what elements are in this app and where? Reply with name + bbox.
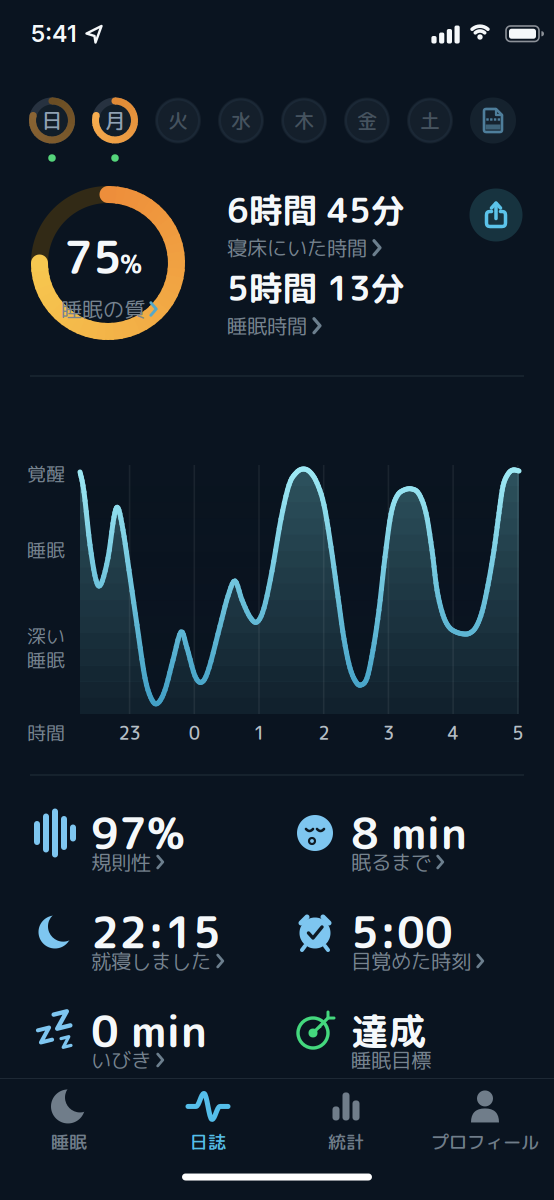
button[interactable]: 睡眠の質 bbox=[61, 294, 159, 324]
staticText: 覚醒 bbox=[27, 461, 65, 487]
staticText: 4 bbox=[448, 720, 459, 745]
staticText: 3 bbox=[383, 720, 394, 745]
button[interactable]: 木 bbox=[281, 97, 327, 143]
button[interactable]: 8 min bbox=[293, 797, 519, 869]
staticText: 時間 bbox=[27, 720, 65, 746]
staticText: 睡眠の質 bbox=[61, 294, 145, 324]
staticText: 就寝しました bbox=[91, 947, 211, 975]
staticText: 金 bbox=[357, 106, 377, 134]
button[interactable]: 月 bbox=[92, 97, 138, 143]
button[interactable]: 97% bbox=[33, 797, 259, 869]
staticText: 23 bbox=[119, 720, 141, 745]
staticText: 統計 bbox=[328, 1129, 364, 1154]
staticText: 睡眠目標 bbox=[351, 1046, 431, 1074]
staticText: 75 bbox=[64, 226, 122, 288]
button[interactable]: 日誌 bbox=[140, 1088, 276, 1156]
button[interactable]: 土 bbox=[407, 97, 453, 143]
staticText: 規則性 bbox=[91, 848, 151, 876]
staticText: 睡眠時間 bbox=[227, 311, 307, 340]
button[interactable]: 共有 bbox=[469, 188, 522, 241]
staticText: 22:15 bbox=[91, 902, 221, 962]
staticText: 8 min bbox=[351, 803, 467, 863]
staticText: 0 bbox=[189, 720, 200, 745]
staticText: 眠るまで bbox=[351, 848, 431, 876]
staticText: 日 bbox=[42, 106, 62, 134]
staticText: 5 bbox=[512, 720, 523, 745]
staticText: 睡眠 bbox=[27, 537, 65, 563]
staticText: 5:00 bbox=[351, 902, 453, 962]
staticText: 深い bbox=[27, 623, 65, 649]
staticText: 目覚めた時刻 bbox=[351, 947, 471, 975]
staticText: 97% bbox=[91, 803, 185, 863]
staticText: 月 bbox=[105, 106, 125, 134]
staticText: 睡眠 bbox=[27, 647, 65, 673]
staticText: 木 bbox=[294, 106, 314, 134]
button[interactable]: 日 bbox=[29, 97, 75, 143]
button[interactable]: レポート bbox=[470, 97, 516, 143]
staticText: プロフィール bbox=[431, 1129, 539, 1154]
staticText: 火 bbox=[168, 106, 188, 134]
staticText: 日誌 bbox=[190, 1129, 226, 1154]
staticText: 水 bbox=[231, 106, 251, 134]
staticText: 5時間 13分 bbox=[227, 264, 405, 311]
staticText: 2 bbox=[318, 720, 329, 745]
button[interactable]: 達成 bbox=[293, 995, 519, 1067]
button[interactable]: 5時間 13分 bbox=[227, 267, 487, 337]
button[interactable]: 22:15 bbox=[33, 896, 259, 968]
button[interactable]: 水 bbox=[218, 97, 264, 143]
button[interactable]: 火 bbox=[155, 97, 201, 143]
staticText: 0 min bbox=[91, 1001, 207, 1061]
staticText: 6時間 45分 bbox=[227, 186, 405, 233]
staticText: % bbox=[120, 246, 142, 282]
button[interactable]: 0 min bbox=[33, 995, 259, 1067]
staticText: 寝床にいた時間 bbox=[227, 233, 367, 262]
staticText: いびき bbox=[91, 1046, 151, 1074]
staticText: 5:41 bbox=[31, 19, 77, 48]
button[interactable]: 睡眠 bbox=[1, 1088, 137, 1156]
button[interactable]: 5:00 bbox=[293, 896, 519, 968]
button[interactable]: 統計 bbox=[278, 1088, 414, 1156]
staticText: 1 bbox=[253, 720, 264, 745]
staticText: 達成 bbox=[351, 1005, 425, 1057]
button[interactable]: 6時間 45分 bbox=[227, 189, 487, 259]
button[interactable]: 金 bbox=[344, 97, 390, 143]
staticText: 睡眠 bbox=[51, 1129, 87, 1154]
button[interactable]: プロフィール bbox=[417, 1088, 553, 1156]
staticText: 土 bbox=[420, 106, 440, 134]
